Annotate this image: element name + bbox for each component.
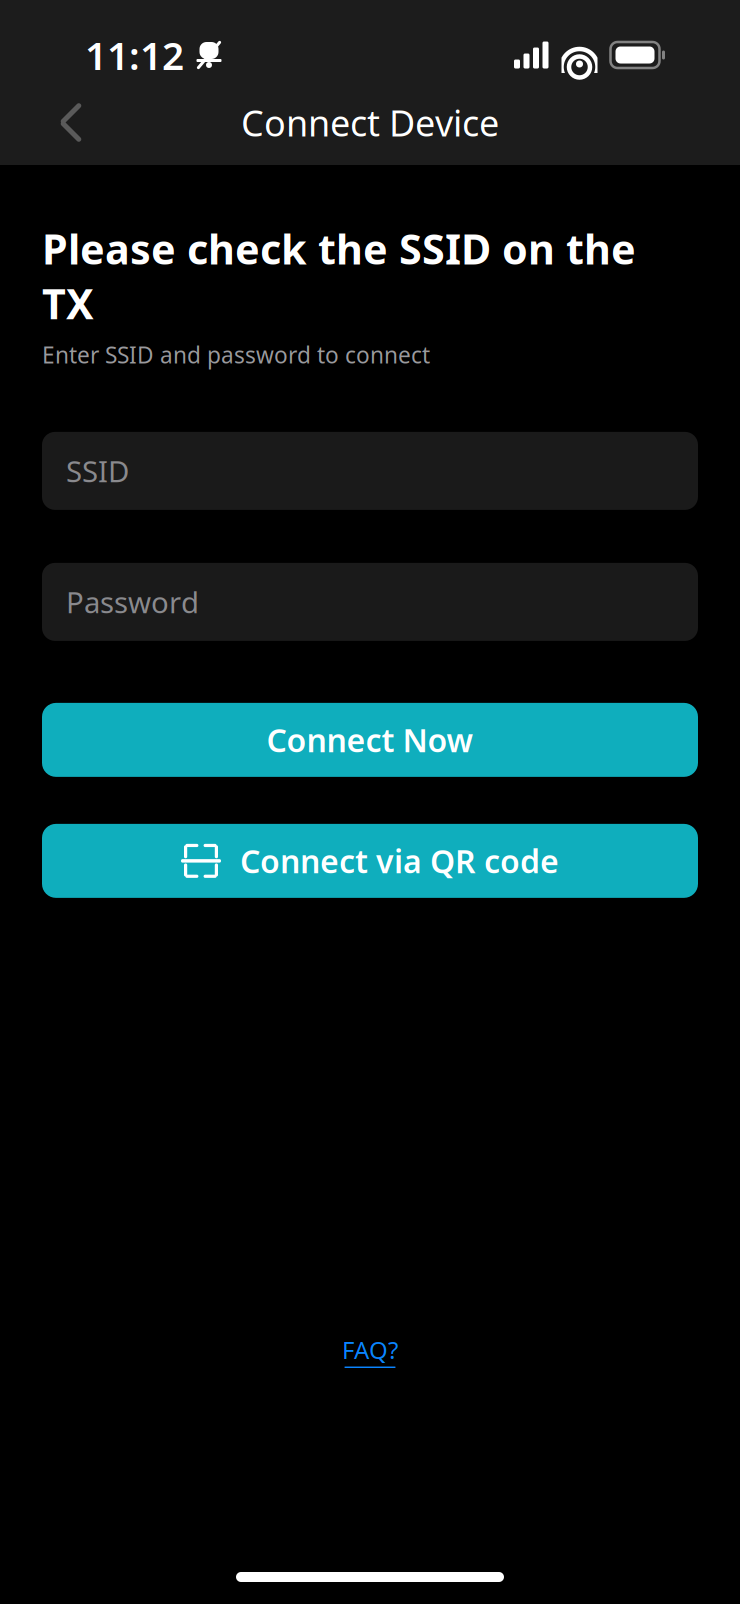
staticText: 11:12 xyxy=(85,29,184,81)
staticText: Connect Now xyxy=(266,719,473,761)
staticText: Please check the SSID on the TX xyxy=(42,221,636,331)
staticText: FAQ? xyxy=(342,1334,398,1365)
staticText: Connect via QR code xyxy=(240,840,559,882)
staticText: Password xyxy=(66,582,199,621)
staticText: Enter SSID and password to connect xyxy=(42,340,430,370)
staticText: SSID xyxy=(66,451,129,490)
button[interactable]: Connect Now xyxy=(42,703,698,777)
button[interactable]: Back xyxy=(40,91,102,153)
button[interactable]: FAQ? xyxy=(328,1326,412,1376)
button[interactable]: Connect via QR code xyxy=(42,824,698,898)
staticText: Connect Device xyxy=(241,99,499,146)
